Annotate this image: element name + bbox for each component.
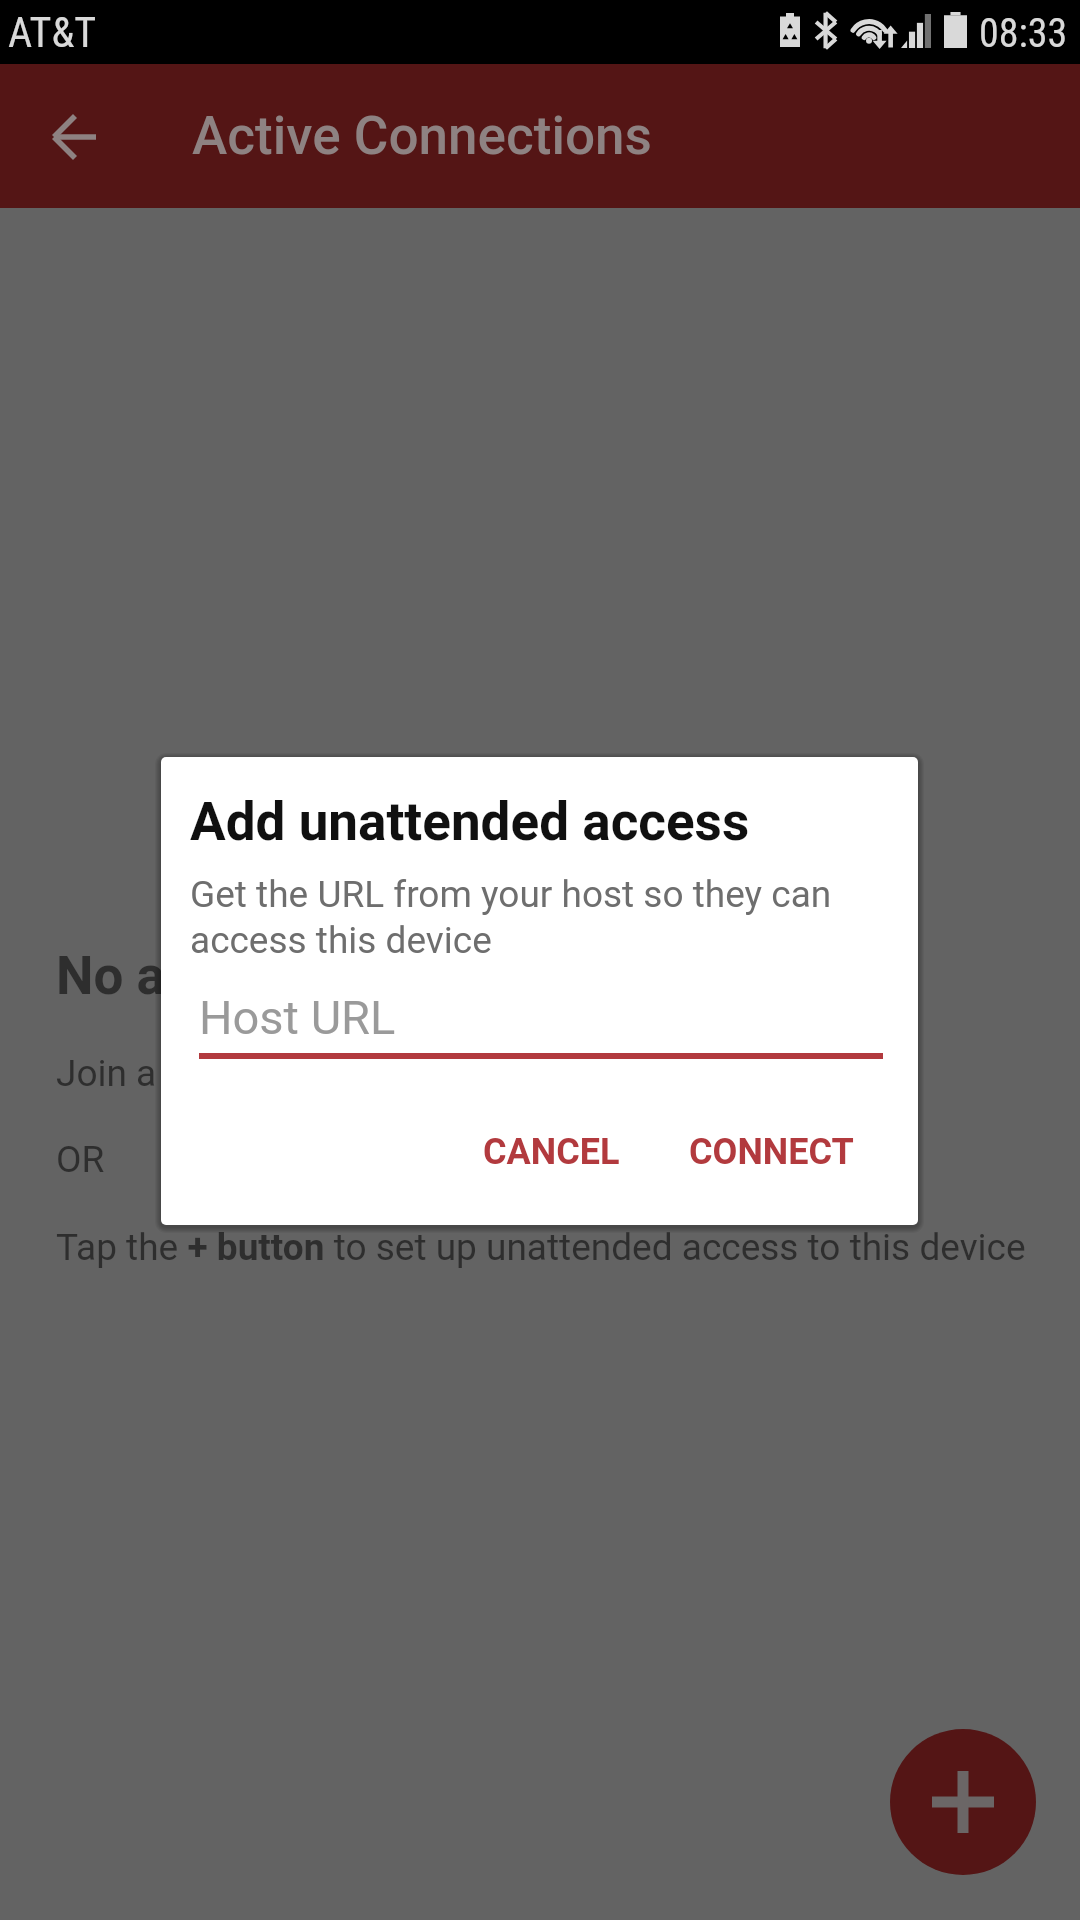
staticText: Join a session to get started	[56, 1052, 524, 1095]
button[interactable]: CONNECT	[673, 1119, 870, 1185]
staticText: Tap the + button to set up unattended ac…	[56, 1226, 1026, 1269]
staticText: 08:33	[979, 10, 1068, 57]
staticText: AT&T	[8, 8, 97, 57]
staticText: CANCEL	[483, 1131, 620, 1173]
staticText: Add unattended access	[190, 791, 750, 853]
button[interactable]: Add unattended access	[890, 1729, 1036, 1875]
staticText: No active connections	[56, 945, 586, 1007]
button[interactable]: CANCEL	[467, 1119, 636, 1185]
staticText: Active Connections	[192, 105, 652, 167]
staticText: CONNECT	[689, 1131, 854, 1173]
staticText: OR	[56, 1138, 105, 1181]
staticText: Host URL	[199, 990, 396, 1045]
staticText: Get the URL from your host so they can a…	[190, 873, 850, 962]
button[interactable]: Host URL	[199, 977, 883, 1059]
button[interactable]: Back	[25, 87, 125, 187]
